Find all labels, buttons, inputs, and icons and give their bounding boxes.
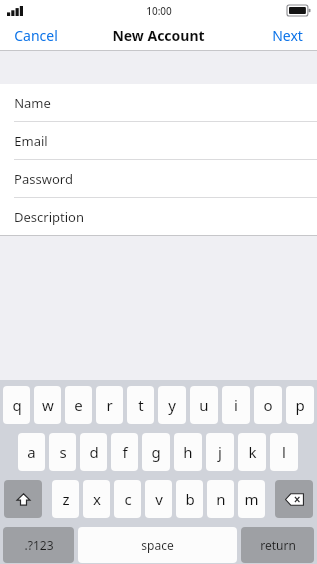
button[interactable]: g bbox=[142, 433, 170, 471]
button[interactable]: a bbox=[18, 433, 45, 471]
button[interactable]: Email bbox=[0, 122, 317, 159]
button[interactable]: p bbox=[286, 386, 314, 424]
button[interactable]: i bbox=[222, 386, 250, 424]
staticText: i bbox=[234, 395, 238, 415]
staticText: d bbox=[89, 442, 99, 462]
button[interactable]: h bbox=[174, 433, 202, 471]
staticText: p bbox=[295, 395, 305, 415]
button[interactable]: f bbox=[111, 433, 138, 471]
button[interactable]: Shift bbox=[4, 480, 42, 518]
button[interactable]: e bbox=[65, 386, 92, 424]
staticText: Cancel bbox=[14, 26, 58, 45]
button[interactable]: l bbox=[270, 433, 298, 471]
button[interactable]: k bbox=[238, 433, 266, 471]
staticText: r bbox=[106, 395, 113, 415]
button[interactable]: b bbox=[176, 480, 203, 518]
staticText: e bbox=[74, 395, 83, 415]
staticText: o bbox=[263, 395, 273, 415]
button[interactable]: c bbox=[114, 480, 141, 518]
button[interactable]: space bbox=[78, 527, 237, 563]
button[interactable]: Next bbox=[258, 21, 317, 50]
staticText: j bbox=[218, 442, 222, 462]
button[interactable]: y bbox=[158, 386, 186, 424]
button[interactable]: m bbox=[238, 480, 265, 518]
staticText: g bbox=[151, 442, 161, 462]
button[interactable]: t bbox=[127, 386, 154, 424]
staticText: Next bbox=[272, 26, 303, 45]
staticText: x bbox=[93, 489, 101, 509]
staticText: s bbox=[59, 442, 67, 462]
staticText: h bbox=[183, 442, 193, 462]
button[interactable]: q bbox=[3, 386, 30, 424]
button[interactable]: u bbox=[190, 386, 218, 424]
button[interactable]: Password bbox=[0, 160, 317, 197]
button[interactable]: Name bbox=[0, 84, 317, 121]
staticText: New Account bbox=[112, 26, 205, 45]
staticText: Email bbox=[14, 132, 48, 150]
button[interactable]: n bbox=[207, 480, 234, 518]
staticText: Password bbox=[14, 170, 73, 188]
button[interactable]: j bbox=[206, 433, 234, 471]
staticText: v bbox=[155, 489, 163, 509]
button[interactable]: s bbox=[49, 433, 76, 471]
staticText: Name bbox=[14, 94, 51, 112]
staticText: .?123 bbox=[24, 537, 54, 553]
staticText: 10:00 bbox=[146, 4, 172, 18]
button[interactable]: x bbox=[83, 480, 110, 518]
button[interactable]: z bbox=[52, 480, 79, 518]
button[interactable]: Description bbox=[0, 198, 317, 235]
button[interactable]: return bbox=[241, 527, 314, 563]
staticText: a bbox=[27, 442, 36, 462]
button[interactable]: r bbox=[96, 386, 123, 424]
button[interactable]: Backspace bbox=[275, 480, 313, 518]
staticText: u bbox=[199, 395, 209, 415]
staticText: f bbox=[122, 442, 128, 462]
staticText: w bbox=[42, 395, 54, 415]
staticText: return bbox=[260, 537, 296, 553]
button[interactable]: w bbox=[34, 386, 61, 424]
button[interactable]: .?123 bbox=[3, 527, 74, 563]
staticText: m bbox=[244, 489, 259, 509]
staticText: b bbox=[185, 489, 195, 509]
staticText: t bbox=[138, 395, 144, 415]
staticText: l bbox=[282, 442, 286, 462]
staticText: n bbox=[216, 489, 226, 509]
button[interactable]: v bbox=[145, 480, 172, 518]
button[interactable]: o bbox=[254, 386, 282, 424]
staticText: c bbox=[124, 489, 132, 509]
staticText: q bbox=[12, 395, 22, 415]
staticText: z bbox=[62, 489, 70, 509]
button[interactable]: Cancel bbox=[0, 21, 72, 50]
staticText: Description bbox=[14, 208, 84, 226]
staticText: space bbox=[141, 537, 174, 553]
staticText: k bbox=[248, 442, 257, 462]
staticText: y bbox=[168, 395, 176, 415]
button[interactable]: d bbox=[80, 433, 107, 471]
